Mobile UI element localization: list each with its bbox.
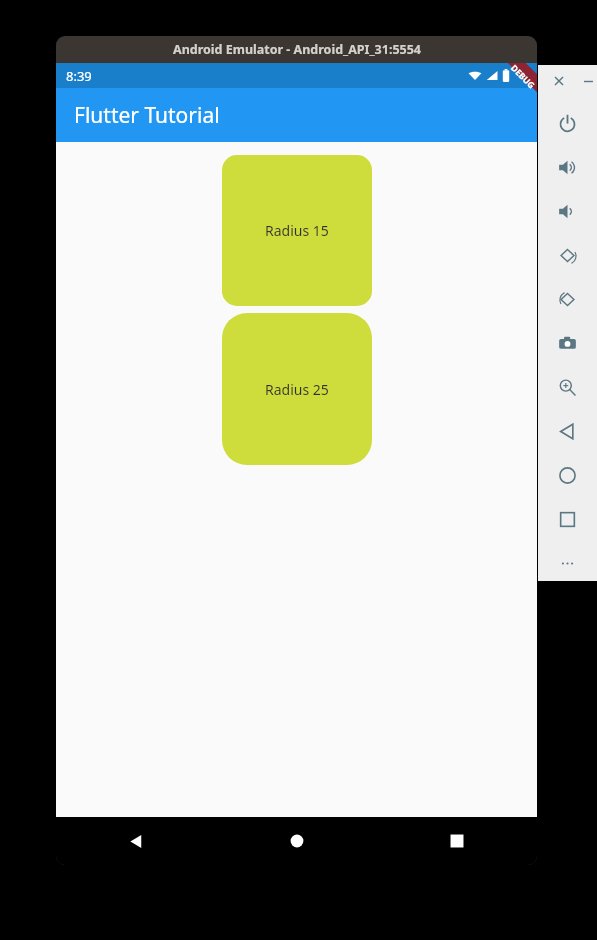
button[interactable]: Screenshot	[538, 321, 597, 365]
staticText: Android Emulator - Android_API_31:5554	[173, 41, 421, 58]
button[interactable]: Overview	[377, 817, 537, 865]
button[interactable]: Home	[217, 817, 377, 865]
button[interactable]: Power	[538, 101, 597, 145]
button[interactable]: Minimize	[580, 70, 597, 92]
staticText: 8:39	[66, 67, 92, 85]
button[interactable]: Radius 15	[222, 155, 372, 306]
button[interactable]: Volume up	[538, 145, 597, 189]
button[interactable]: Radius 25	[222, 313, 372, 465]
staticText: Flutter Tutorial	[74, 101, 220, 130]
button[interactable]: Rotate right	[538, 277, 597, 321]
button[interactable]: Back	[56, 817, 217, 865]
button[interactable]: Zoom	[538, 365, 597, 409]
staticText: Radius 15	[265, 221, 329, 240]
staticText: Radius 25	[265, 380, 329, 399]
button[interactable]: Back	[538, 409, 597, 453]
button[interactable]: Overview	[538, 497, 597, 541]
button[interactable]: Home	[538, 453, 597, 497]
button[interactable]: Volume down	[538, 189, 597, 233]
staticText: DEBUG	[508, 62, 537, 92]
button[interactable]: More options	[538, 541, 597, 585]
button[interactable]: Rotate left	[538, 233, 597, 277]
button[interactable]: Close	[548, 70, 570, 92]
